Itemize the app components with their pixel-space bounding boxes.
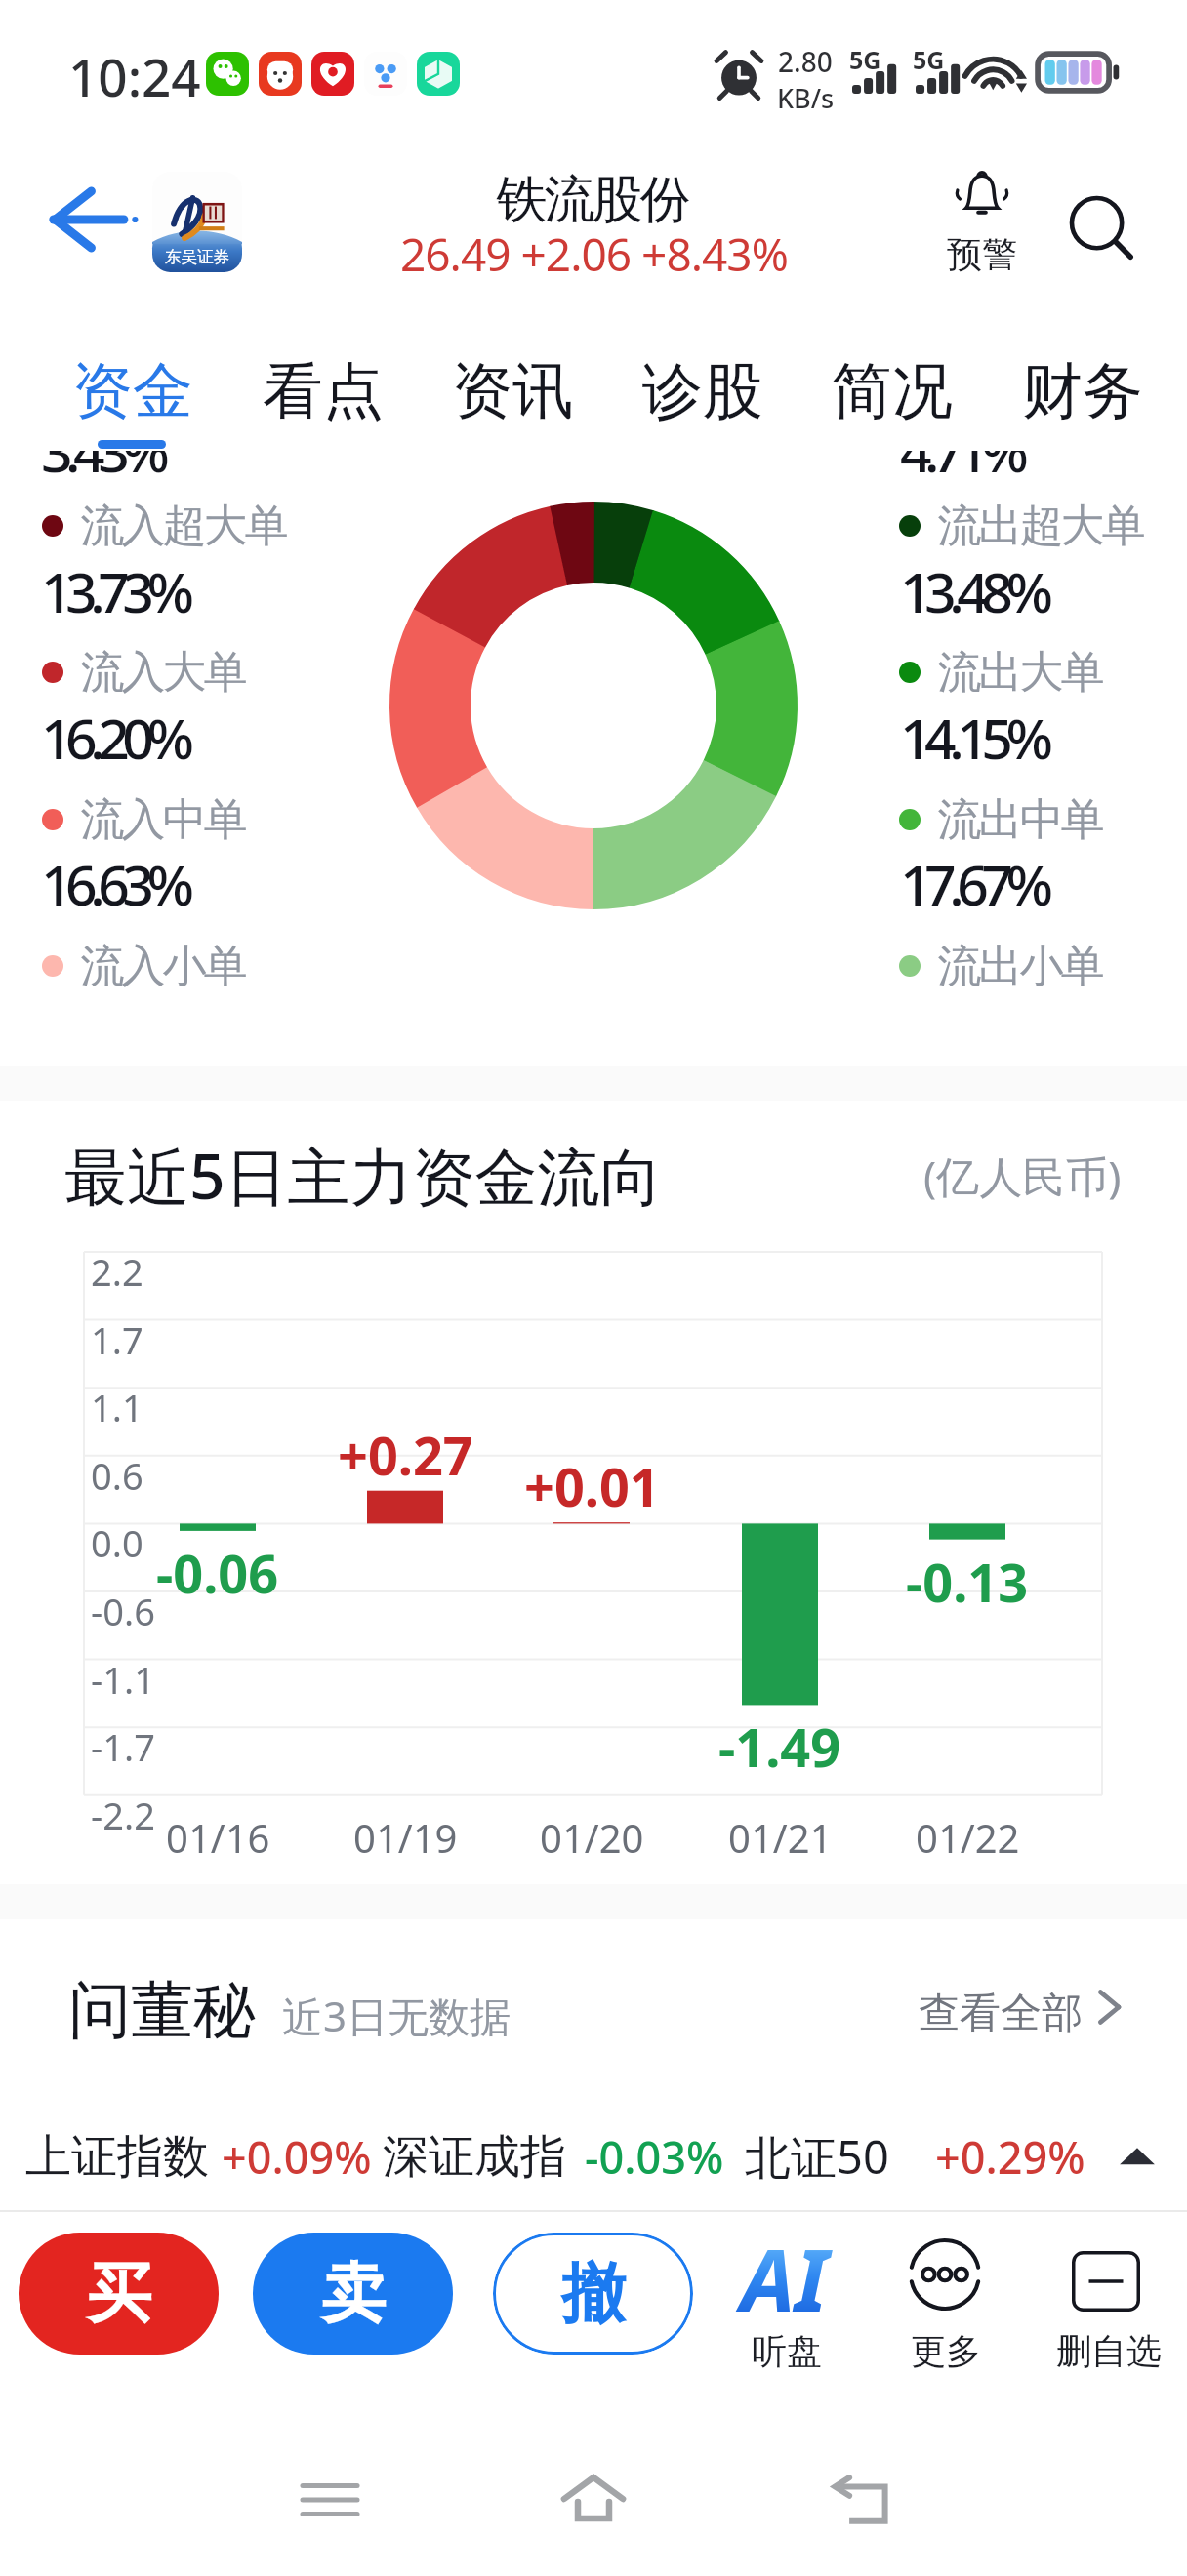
button[interactable]: 北证50 [745, 2115, 889, 2197]
staticText: 1.7 [91, 1314, 143, 1365]
staticText: 13.73% [41, 553, 187, 629]
staticText: 01/16 [166, 1811, 270, 1858]
staticText: 撤 [561, 2253, 626, 2334]
staticText: KB/s [777, 80, 835, 116]
staticText: 查看全部 [919, 1988, 1083, 2039]
staticText: -0.06 [156, 1537, 279, 1595]
button[interactable]: 流出超大单 [898, 499, 1103, 555]
button[interactable]: -0.03% [585, 2115, 724, 2197]
staticText: 5G [849, 43, 881, 76]
staticText: -0.03% [585, 2127, 724, 2187]
staticText: 3.43% [41, 413, 163, 489]
staticText: 流出超大单 [939, 499, 1144, 554]
staticText: 诊股 [642, 353, 763, 429]
staticText: 流入大单 [82, 645, 246, 701]
button[interactable]: 流出中单 [898, 792, 1062, 849]
staticText: 最近5日主力资金流向 [64, 1133, 663, 1218]
staticText: 26.49 +2.06 +8.43% [400, 223, 788, 285]
button[interactable]: 更多 [867, 2233, 1023, 2377]
staticText: 听盘 [752, 2329, 822, 2373]
staticText: 资讯 [452, 353, 573, 429]
button[interactable]: 深证成指 [383, 2115, 566, 2197]
button[interactable]: 主页 [550, 2454, 637, 2542]
staticText: +0.29% [935, 2127, 1085, 2187]
staticText: 问董秘 [68, 1971, 256, 2050]
staticText: 流出小单 [939, 939, 1103, 994]
button[interactable]: 展开 [1093, 2117, 1181, 2195]
button[interactable]: 财务 [1006, 342, 1159, 439]
button[interactable]: 流入超大单 [41, 499, 246, 555]
staticText: 4.71% [900, 413, 1022, 489]
staticText: +0.01 [524, 1450, 660, 1509]
button[interactable]: 返回 [816, 2456, 904, 2544]
staticText: 资金 [72, 353, 193, 429]
button[interactable]: 最近任务 [286, 2456, 374, 2544]
button[interactable]: 资讯 [436, 342, 589, 439]
staticText: 北证50 [745, 2125, 889, 2188]
staticText: 0.0 [91, 1517, 143, 1568]
staticText: 买 [87, 2253, 151, 2334]
staticText: 01/22 [916, 1811, 1020, 1858]
button[interactable]: 流入中单 [41, 792, 205, 849]
staticText: 2.80 [778, 43, 833, 80]
staticText: 更多 [911, 2329, 981, 2373]
staticText: 深证成指 [383, 2128, 566, 2186]
staticText: -1.1 [91, 1654, 155, 1705]
staticText: 01/20 [540, 1811, 644, 1858]
staticText: AI [741, 2220, 828, 2337]
staticText: 17.67% [900, 846, 1046, 922]
button[interactable]: 流入大单 [41, 645, 205, 702]
staticText: 流入中单 [82, 792, 246, 848]
button[interactable]: 流入小单 [41, 939, 205, 995]
button[interactable]: 资金 [57, 342, 209, 439]
staticText: 近3日无数据 [282, 1988, 512, 2043]
staticText: 01/21 [728, 1811, 833, 1858]
staticText: 预警 [947, 232, 1017, 276]
button[interactable]: 铁流股份 [498, 168, 689, 232]
staticText: 卖 [321, 2253, 386, 2334]
button[interactable]: AI [709, 2233, 863, 2377]
button[interactable]: 卖 [253, 2233, 453, 2355]
button[interactable]: 删自选 [1033, 2233, 1179, 2377]
button[interactable]: 问董秘 [0, 1919, 1187, 2095]
button[interactable]: 撤 [493, 2233, 693, 2355]
staticText: 16.63% [41, 846, 187, 922]
staticText: 上证指数 [25, 2128, 209, 2186]
staticText: -1.7 [91, 1721, 155, 1772]
staticText: -1.49 [718, 1711, 841, 1769]
button[interactable]: +0.09% [222, 2115, 372, 2197]
staticText: -0.6 [91, 1586, 155, 1636]
staticText: 1.1 [91, 1382, 143, 1432]
staticText: 16.20% [41, 700, 187, 776]
button[interactable]: 流出大单 [898, 645, 1062, 702]
button[interactable]: 流出小单 [898, 939, 1062, 995]
staticText: (亿人民币) [923, 1147, 1122, 1205]
button[interactable]: 诊股 [627, 342, 779, 439]
staticText: 01/19 [353, 1811, 458, 1858]
staticText: -0.13 [906, 1546, 1029, 1604]
staticText: 流入超大单 [82, 499, 287, 554]
staticText: +0.09% [222, 2127, 372, 2187]
button[interactable]: 搜索 [1044, 166, 1154, 283]
button[interactable]: 买 [19, 2233, 219, 2355]
staticText: 简况 [832, 353, 953, 429]
staticText: 13.48% [900, 553, 1046, 629]
staticText: +0.27 [338, 1419, 473, 1477]
staticText: 财务 [1022, 353, 1143, 429]
button[interactable]: 预警 [927, 166, 1037, 283]
button[interactable]: 看点 [247, 342, 399, 439]
staticText: 0.6 [91, 1450, 143, 1501]
button[interactable]: 返回 [31, 181, 158, 259]
staticText: 删自选 [1056, 2329, 1162, 2373]
staticText: 看点 [263, 353, 384, 429]
button[interactable]: 上证指数 [25, 2115, 209, 2197]
button[interactable]: 简况 [816, 342, 968, 439]
staticText: -2.2 [91, 1790, 155, 1840]
staticText: 流出大单 [939, 645, 1103, 701]
staticText: 5G [913, 43, 945, 76]
button[interactable]: +0.29% [935, 2115, 1085, 2197]
button[interactable]: 东吴证券 [152, 172, 242, 272]
staticText: 东吴证券 [165, 247, 229, 267]
staticText: 14.15% [900, 700, 1046, 776]
staticText: 流入小单 [82, 939, 246, 994]
